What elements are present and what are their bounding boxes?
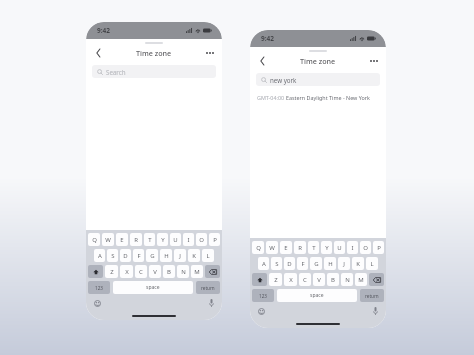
button[interactable]: More options	[368, 55, 380, 67]
button[interactable]: Backspace	[205, 265, 220, 278]
button[interactable]: D	[120, 249, 131, 262]
button[interactable]: GMT-04:00	[257, 89, 379, 105]
button[interactable]: O	[360, 241, 371, 254]
button[interactable]: N	[177, 265, 189, 278]
staticText: GMT-04:00	[257, 94, 286, 101]
staticText: D	[287, 260, 292, 268]
button[interactable]: Y	[157, 233, 168, 246]
button[interactable]: Back	[92, 47, 104, 59]
staticText: return	[365, 293, 379, 299]
button[interactable]: R	[130, 233, 142, 246]
button[interactable]: Z	[105, 265, 118, 278]
button[interactable]: Emoji	[256, 306, 266, 316]
button[interactable]: 123	[252, 289, 274, 302]
staticText: T	[312, 244, 316, 252]
button[interactable]: S	[271, 257, 282, 270]
staticText: Y	[325, 244, 329, 252]
button[interactable]: E	[280, 241, 292, 254]
staticText: space	[146, 284, 160, 291]
button[interactable]: H	[160, 249, 172, 262]
button[interactable]: M	[355, 273, 367, 286]
button[interactable]: B	[327, 273, 339, 286]
button[interactable]: A	[94, 249, 105, 262]
staticText: O	[199, 236, 204, 244]
staticText: return	[201, 285, 215, 291]
staticText: F	[137, 252, 141, 260]
button[interactable]: More options	[204, 47, 216, 59]
button[interactable]: Q	[88, 233, 100, 246]
button[interactable]: F	[133, 249, 144, 262]
button[interactable]: U	[170, 233, 181, 246]
button[interactable]: K	[188, 249, 200, 262]
button[interactable]: X	[120, 265, 133, 278]
button[interactable]: J	[174, 249, 186, 262]
button[interactable]: return	[360, 289, 384, 302]
button[interactable]: Dictation	[370, 306, 380, 316]
button[interactable]: E	[116, 233, 128, 246]
button[interactable]: L	[366, 257, 378, 270]
staticText: P	[377, 244, 381, 252]
button[interactable]: C	[135, 265, 147, 278]
button[interactable]: Backspace	[369, 273, 384, 286]
staticText: X	[289, 276, 293, 284]
button[interactable]: J	[338, 257, 350, 270]
button[interactable]: G	[310, 257, 322, 270]
staticText: H	[328, 260, 333, 268]
staticText: 123	[95, 285, 103, 291]
button[interactable]: return	[196, 281, 220, 294]
button[interactable]: space	[113, 281, 193, 294]
button[interactable]: P	[209, 233, 220, 246]
button[interactable]: V	[149, 265, 161, 278]
button[interactable]: N	[341, 273, 353, 286]
button[interactable]: G	[146, 249, 158, 262]
button[interactable]: V	[313, 273, 325, 286]
staticText: Y	[161, 236, 165, 244]
button[interactable]: P	[373, 241, 384, 254]
staticText: Eastern Daylight Time - New York	[286, 94, 370, 101]
staticText: C	[303, 276, 307, 284]
button[interactable]: C	[299, 273, 311, 286]
button[interactable]: F	[297, 257, 308, 270]
button[interactable]: L	[202, 249, 214, 262]
staticText: C	[139, 268, 143, 276]
staticText: R	[134, 236, 138, 244]
button[interactable]: B	[163, 265, 175, 278]
button[interactable]: I	[347, 241, 358, 254]
button[interactable]: 123	[88, 281, 110, 294]
button[interactable]: W	[102, 233, 114, 246]
staticText: V	[153, 268, 157, 276]
button[interactable]: new york	[256, 73, 380, 86]
button[interactable]: A	[258, 257, 269, 270]
staticText: new york	[270, 76, 297, 84]
button[interactable]: R	[294, 241, 306, 254]
staticText: V	[317, 276, 321, 284]
button[interactable]: Y	[321, 241, 332, 254]
staticText: X	[125, 268, 129, 276]
button[interactable]: M	[191, 265, 203, 278]
button[interactable]: W	[266, 241, 278, 254]
button[interactable]: Z	[269, 273, 282, 286]
button[interactable]: I	[183, 233, 194, 246]
button[interactable]: Shift	[252, 273, 267, 286]
button[interactable]: O	[196, 233, 207, 246]
button[interactable]: Q	[252, 241, 264, 254]
button[interactable]: Shift	[88, 265, 103, 278]
button[interactable]: Search	[92, 65, 216, 78]
button[interactable]: K	[352, 257, 364, 270]
button[interactable]: X	[284, 273, 297, 286]
staticText: A	[98, 252, 102, 260]
staticText: E	[284, 244, 288, 252]
staticText: F	[301, 260, 305, 268]
button[interactable]: T	[308, 241, 319, 254]
button[interactable]: H	[324, 257, 336, 270]
button[interactable]: Emoji	[92, 298, 102, 308]
button[interactable]: U	[334, 241, 345, 254]
button[interactable]: Dictation	[206, 298, 216, 308]
button[interactable]: D	[284, 257, 295, 270]
button[interactable]: space	[277, 289, 357, 302]
button[interactable]: T	[144, 233, 155, 246]
button[interactable]: Back	[256, 55, 268, 67]
staticText: Search	[106, 68, 126, 76]
staticText: N	[345, 276, 350, 284]
button[interactable]: S	[107, 249, 118, 262]
